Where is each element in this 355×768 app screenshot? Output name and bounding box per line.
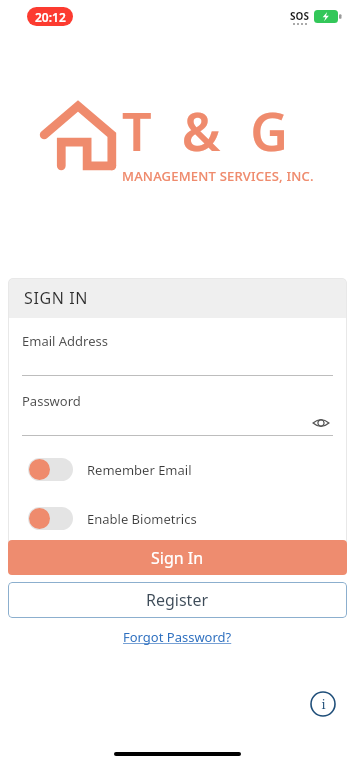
button[interactable]: Show password (309, 411, 333, 435)
staticText: SOS (290, 9, 309, 23)
staticText: T & G (122, 95, 290, 166)
button[interactable]: Information (308, 689, 337, 718)
staticText: i (321, 695, 326, 713)
staticText: Email Address (22, 332, 108, 350)
staticText: Remember Email (87, 461, 192, 479)
staticText: Password (22, 392, 81, 410)
staticText: Sign In (151, 547, 204, 569)
staticText: Register (146, 589, 209, 611)
button[interactable]: Sign In (8, 540, 347, 575)
button[interactable]: Enable Biometrics (8, 507, 347, 530)
button[interactable]: Register (8, 582, 347, 618)
staticText: 20:12 (35, 9, 66, 25)
button[interactable]: Remember Email (8, 458, 347, 481)
staticText: MANAGEMENT SERVICES, INC. (122, 167, 314, 185)
button[interactable]: Forgot Password? (117, 626, 238, 648)
staticText: Forgot Password? (123, 628, 232, 646)
staticText: SIGN IN (24, 287, 88, 309)
staticText: Enable Biometrics (87, 510, 197, 528)
